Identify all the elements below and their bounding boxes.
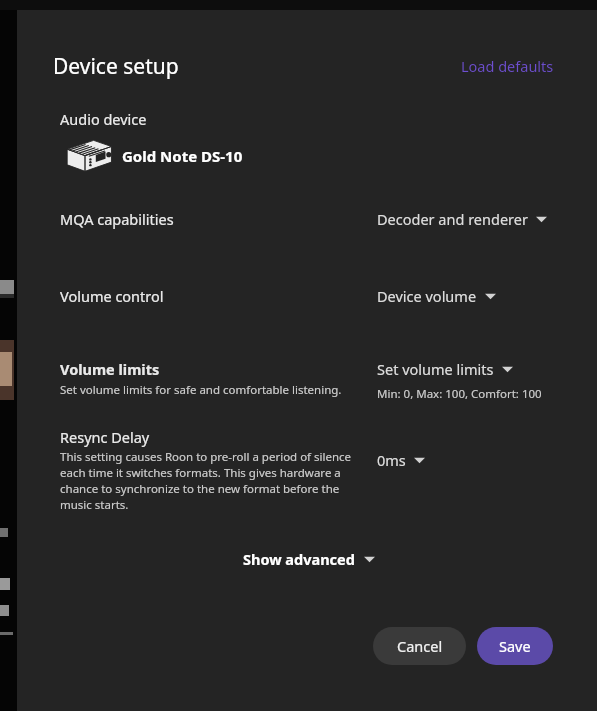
staticText: Volume limits [60, 359, 160, 379]
staticText: Cancel [397, 636, 443, 656]
staticText: Device setup [53, 52, 179, 81]
button[interactable]: 0ms [377, 450, 425, 470]
button[interactable]: Load defaults [461, 56, 554, 76]
button[interactable]: Set volume limits [377, 359, 513, 379]
staticText: Set volume limits [377, 359, 494, 379]
staticText: Set volume limits for safe and comfortab… [60, 382, 342, 398]
staticText: Device volume [377, 286, 477, 306]
staticText: Resync Delay [60, 427, 150, 447]
button[interactable]: Cancel [373, 627, 466, 665]
button[interactable]: Save [477, 627, 553, 665]
button[interactable]: Decoder and renderer [377, 209, 547, 229]
staticText: Volume control [60, 286, 164, 306]
staticText: This setting causes Roon to pre-roll a p… [60, 449, 360, 513]
staticText: Decoder and renderer [377, 209, 528, 229]
staticText: Audio device [60, 109, 147, 129]
staticText: Min: 0, Max: 100, Comfort: 100 [377, 386, 542, 402]
button[interactable]: Device volume [377, 286, 496, 306]
staticText: 0ms [377, 450, 406, 470]
staticText: MQA capabilities [60, 209, 174, 229]
staticText: Show advanced [243, 549, 355, 569]
button[interactable]: Gold Note DS-10 [58, 139, 243, 173]
button[interactable]: Show advanced [243, 549, 375, 569]
staticText: Gold Note DS-10 [122, 146, 243, 166]
staticText: Save [499, 636, 531, 656]
